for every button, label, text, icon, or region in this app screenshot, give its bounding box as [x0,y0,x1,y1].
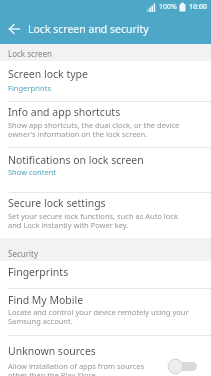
staticText: Allow installation of apps from sources … [8,361,145,376]
staticText: Locate and control your device remotely … [8,307,189,326]
staticText: Show content [8,167,57,177]
button[interactable]: Secure lock settings [0,193,211,238]
staticText: Show app shortcuts, the dual clock, or t… [8,120,180,139]
button[interactable]: Find My Mobile [0,289,211,335]
staticText: Set your secure lock functions, such as … [8,211,178,230]
staticText: Fingerprints [8,83,51,93]
staticText: Secure lock settings [8,196,106,210]
staticText: Notifications on lock screen [8,153,144,167]
button[interactable] [0,14,28,44]
button[interactable]: Info and app shortcuts [0,102,211,147]
staticText: Find My Mobile [8,293,84,307]
staticText: Info and app shortcuts [8,105,121,119]
staticText: 100% [159,2,177,12]
staticText: Unknown sources [8,344,96,358]
button[interactable]: Screen lock type [0,61,211,101]
button[interactable]: Unknown sources [0,336,211,376]
staticText: Lock screen and security [28,22,149,36]
staticText: Lock screen [8,48,53,59]
staticText: Screen lock type [8,67,88,81]
button[interactable]: Notifications on lock screen [0,148,211,192]
staticText: Security [8,248,39,259]
staticText: 10:00 [189,2,207,12]
staticText: Fingerprints [8,265,69,279]
button[interactable]: Fingerprints [0,261,211,288]
